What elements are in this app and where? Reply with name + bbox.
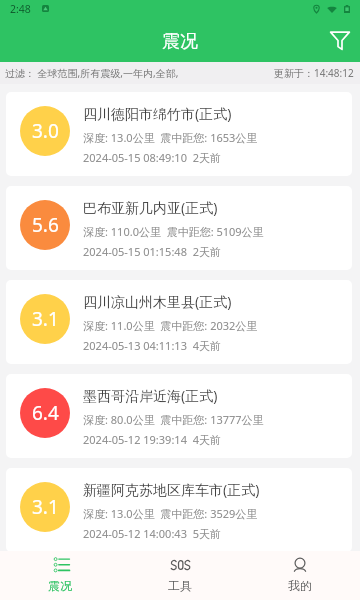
button[interactable]: Filter — [323, 24, 357, 58]
staticText: 深度: 11.0公里 震中距您: 2032公里 — [83, 318, 258, 333]
button[interactable]: 5.6 — [6, 186, 352, 270]
staticText: 更新于：14:48:12 — [274, 66, 354, 80]
staticText: 墨西哥沿岸近海(正式) — [83, 386, 218, 405]
staticText: 深度: 110.0公里 震中距您: 5109公里 — [83, 224, 264, 239]
button[interactable]: 震况 — [0, 551, 120, 600]
staticText: 新疆阿克苏地区库车市(正式) — [83, 480, 260, 499]
staticText: 四川德阳市绵竹市(正式) — [83, 104, 232, 123]
button[interactable]: 我的 — [240, 551, 360, 600]
staticText: 5.6 — [32, 212, 59, 238]
button[interactable]: 3.1 — [6, 468, 352, 552]
staticText: 6.4 — [32, 400, 59, 426]
staticText: 2024-05-15 01:15:48 2天前 — [83, 244, 221, 259]
staticText: 3.1 — [32, 494, 59, 520]
staticText: 2024-05-12 14:00:43 5天前 — [83, 526, 221, 541]
staticText: 2:48 — [10, 2, 31, 16]
staticText: 2024-05-15 08:49:10 2天前 — [83, 150, 221, 165]
staticText: 深度: 13.0公里 震中距您: 3529公里 — [83, 506, 258, 521]
staticText: 深度: 80.0公里 震中距您: 13777公里 — [83, 412, 264, 427]
staticText: 2024-05-12 19:39:14 4天前 — [83, 432, 221, 447]
button[interactable]: 6.4 — [6, 374, 352, 458]
staticText: 巴布亚新几内亚(正式) — [83, 198, 218, 217]
staticText: 四川凉山州木里县(正式) — [83, 292, 232, 311]
staticText: 工具 — [168, 578, 192, 593]
staticText: 3.1 — [32, 306, 59, 332]
staticText: 震况 — [48, 578, 72, 593]
staticText: 3.0 — [32, 118, 59, 144]
staticText: 震况 — [162, 30, 198, 53]
staticText: 2024-05-13 04:11:13 4天前 — [83, 338, 221, 353]
button[interactable]: 3.0 — [6, 92, 352, 176]
button[interactable]: 工具 — [120, 551, 240, 600]
button[interactable]: 3.1 — [6, 280, 352, 364]
staticText: 过滤： 全球范围,所有震级,一年内,全部, — [5, 66, 179, 80]
staticText: 深度: 13.0公里 震中距您: 1653公里 — [83, 130, 258, 145]
staticText: 我的 — [288, 578, 312, 593]
